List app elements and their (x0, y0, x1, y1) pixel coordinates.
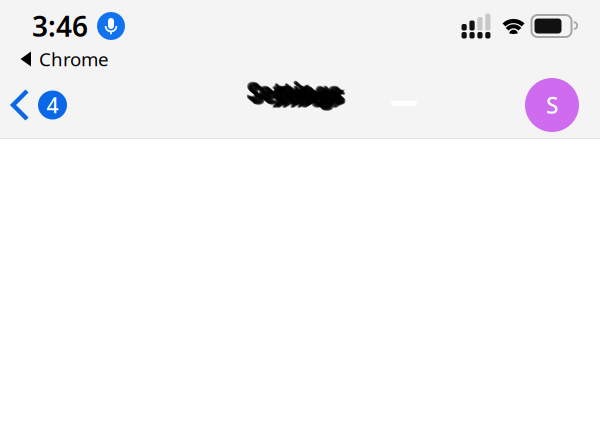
staticText: Settings (252, 80, 345, 110)
staticText: Inbox (274, 83, 339, 113)
staticText: Settings (249, 77, 342, 107)
staticText: Settings (251, 79, 344, 109)
staticText: Inbox (277, 81, 342, 111)
staticText: Inbox (275, 82, 340, 112)
staticText: Inbox (272, 84, 337, 114)
staticText: Settings (252, 80, 345, 110)
staticText: Settings (249, 78, 342, 108)
staticText: 3:46 (32, 7, 88, 45)
staticText: 4 (46, 91, 58, 119)
staticText: Settings (247, 76, 340, 106)
staticText: Chrome (39, 47, 109, 71)
staticText: Inbox (279, 79, 344, 110)
button[interactable]: Back, 4 unread (0, 83, 67, 127)
staticText: Inbox (278, 80, 343, 110)
staticText: Inbox (273, 83, 338, 114)
staticText: Inbox (278, 80, 343, 111)
staticText: Inbox (276, 81, 341, 112)
staticText: Settings (247, 76, 340, 106)
staticText: Inbox (274, 82, 339, 113)
staticText: Settings (246, 75, 339, 105)
staticText: S (546, 90, 558, 120)
staticText: Settings (253, 81, 346, 111)
button[interactable]: Back to Chrome (0, 46, 600, 72)
staticText: Settings (250, 79, 343, 109)
staticText: Settings (248, 77, 341, 107)
button[interactable]: Account (525, 78, 600, 132)
staticText: Inbox (280, 79, 345, 109)
